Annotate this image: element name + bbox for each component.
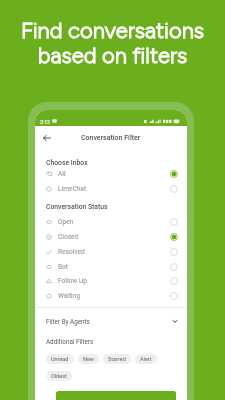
button[interactable] (56, 391, 176, 400)
staticText: Follow Up (58, 277, 87, 285)
staticText: Oldest (51, 373, 67, 379)
button[interactable]: Back (39, 126, 55, 149)
staticText: Choose Inbox (46, 159, 88, 167)
button[interactable]: Oldest (46, 371, 72, 381)
staticText: Open (58, 218, 74, 226)
button[interactable]: Starred (103, 354, 131, 364)
button[interactable]: Waiting (35, 288, 187, 303)
staticText: LimeChat (58, 185, 87, 193)
staticText: Conversation Filter (81, 134, 141, 142)
button[interactable]: Conversation Filter (35, 126, 187, 149)
button[interactable]: Closed (35, 229, 187, 244)
button[interactable]: Resolved (35, 244, 187, 259)
staticText: Closed (58, 233, 79, 241)
staticText: Bot (58, 263, 69, 271)
staticText: All (58, 170, 66, 178)
staticText: Waiting (58, 292, 81, 300)
other: Expand (172, 318, 178, 324)
staticText: Additional Filters (46, 338, 94, 345)
staticText: Starred (108, 356, 126, 362)
button[interactable]: New (78, 354, 99, 364)
staticText: Conversation Status (46, 203, 108, 211)
staticText: Resolved (58, 248, 85, 256)
button[interactable]: All (35, 166, 187, 181)
staticText: 3:12 (40, 119, 51, 125)
button[interactable]: LimeChat (35, 181, 187, 196)
button[interactable]: Alert (135, 354, 157, 364)
button[interactable]: Unread (46, 354, 74, 364)
staticText: Alert (140, 356, 152, 362)
button[interactable]: Follow Up (35, 273, 187, 288)
button[interactable]: Filter By Agents (35, 312, 187, 330)
staticText: Filter By Agents (46, 318, 90, 325)
staticText: New (83, 356, 94, 362)
staticText: Find conversations based on filters (0, 17, 225, 68)
button[interactable]: Open (35, 214, 187, 229)
staticText: Unread (51, 356, 69, 362)
button[interactable]: Bot (35, 259, 187, 274)
